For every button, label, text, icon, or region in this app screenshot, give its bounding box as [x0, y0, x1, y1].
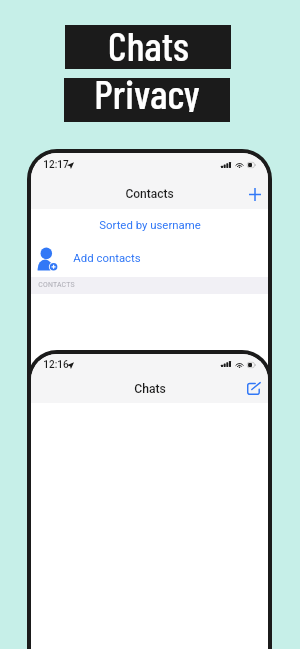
staticText: CONTACTS: [38, 281, 75, 289]
staticText: Add contacts: [73, 251, 141, 264]
button[interactable]: Add contact: [244, 183, 266, 205]
staticText: Privacy: [94, 68, 200, 112]
staticText: Contacts: [125, 187, 174, 201]
staticText: Chats: [108, 20, 189, 64]
staticText: 12:16: [43, 359, 69, 371]
staticText: Chats: [134, 382, 166, 396]
button[interactable]: Chats: [65, 25, 231, 69]
button[interactable]: [31, 240, 268, 274]
button[interactable]: New message: [243, 377, 265, 399]
button[interactable]: [31, 214, 268, 234]
button[interactable]: Privacy: [64, 78, 230, 122]
staticText: Sorted by username: [99, 218, 201, 231]
staticText: 12:17: [43, 159, 69, 171]
